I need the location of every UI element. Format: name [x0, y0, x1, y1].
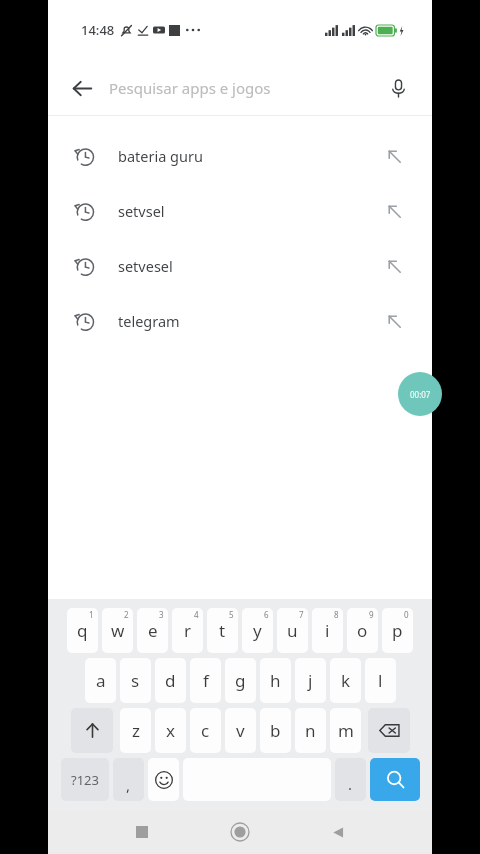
button[interactable]: Search: [370, 758, 420, 801]
button[interactable]: e: [137, 608, 168, 653]
button[interactable]: i: [312, 608, 343, 653]
staticText: 3: [159, 609, 164, 620]
staticText: setvsel: [118, 201, 165, 221]
staticText: ,: [126, 775, 131, 795]
staticText: k: [341, 669, 351, 692]
staticText: f: [203, 669, 209, 692]
button[interactable]: p: [382, 608, 413, 653]
staticText: 4: [194, 609, 199, 620]
button[interactable]: k: [330, 658, 361, 703]
button[interactable]: a: [85, 658, 116, 703]
button[interactable]: q: [67, 608, 98, 653]
button[interactable]: Back: [60, 66, 104, 110]
button[interactable]: Emoji: [148, 758, 179, 801]
button[interactable]: setvsel: [48, 183, 432, 238]
staticText: t: [219, 619, 226, 642]
button[interactable]: z: [120, 708, 151, 753]
staticText: 6: [264, 609, 269, 620]
button[interactable]: h: [260, 658, 291, 703]
staticText: r: [184, 619, 192, 642]
button[interactable]: Recents: [120, 810, 164, 854]
button[interactable]: w: [102, 608, 133, 653]
staticText: g: [235, 669, 246, 692]
button[interactable]: x: [155, 708, 186, 753]
staticText: c: [201, 719, 210, 742]
button[interactable]: Shift: [71, 708, 113, 753]
staticText: 2: [124, 609, 129, 620]
button[interactable]: Insert telegram into search: [382, 309, 406, 333]
button[interactable]: Pesquisar apps e jogos: [104, 60, 378, 115]
button[interactable]: v: [225, 708, 256, 753]
button[interactable]: j: [295, 658, 326, 703]
staticText: m: [338, 719, 354, 742]
staticText: telegram: [118, 311, 180, 331]
staticText: b: [270, 719, 281, 742]
staticText: 00:07: [410, 389, 431, 400]
button[interactable]: c: [190, 708, 221, 753]
button[interactable]: m: [330, 708, 361, 753]
button[interactable]: Voice search: [378, 68, 418, 108]
staticText: 7: [299, 609, 304, 620]
staticText: ?123: [71, 771, 99, 789]
staticText: x: [166, 719, 175, 742]
button[interactable]: bateria guru: [48, 128, 432, 183]
button[interactable]: b: [260, 708, 291, 753]
staticText: Pesquisar apps e jogos: [109, 78, 271, 98]
button[interactable]: y: [242, 608, 273, 653]
button[interactable]: telegram: [48, 293, 432, 348]
staticText: 1: [89, 609, 94, 620]
button[interactable]: s: [120, 658, 151, 703]
button[interactable]: Home: [218, 810, 262, 854]
staticText: z: [132, 719, 140, 742]
button[interactable]: Insert setvesel into search: [382, 254, 406, 278]
staticText: j: [308, 669, 313, 692]
button[interactable]: ,: [113, 758, 144, 801]
staticText: h: [270, 669, 281, 692]
button[interactable]: t: [207, 608, 238, 653]
staticText: s: [131, 669, 140, 692]
staticText: o: [357, 619, 368, 642]
button[interactable]: o: [347, 608, 378, 653]
staticText: u: [287, 619, 298, 642]
button[interactable]: f: [190, 658, 221, 703]
staticText: 9: [369, 609, 374, 620]
staticText: 5: [229, 609, 234, 620]
staticText: 8: [334, 609, 339, 620]
staticText: e: [148, 619, 158, 642]
button[interactable]: u: [277, 608, 308, 653]
button[interactable]: r: [172, 608, 203, 653]
staticText: a: [96, 669, 106, 692]
button[interactable]: Back: [316, 810, 360, 854]
staticText: l: [378, 669, 383, 692]
staticText: q: [77, 619, 88, 642]
button[interactable]: g: [225, 658, 256, 703]
button[interactable]: setvesel: [48, 238, 432, 293]
button[interactable]: n: [295, 708, 326, 753]
button[interactable]: ?123: [61, 758, 109, 801]
staticText: bateria guru: [118, 146, 203, 166]
staticText: d: [165, 669, 176, 692]
button[interactable]: .: [335, 758, 366, 801]
button[interactable]: Insert setvsel into search: [382, 199, 406, 223]
staticText: setvesel: [118, 256, 173, 276]
button[interactable]: l: [365, 658, 396, 703]
button[interactable]: Backspace: [368, 708, 410, 753]
staticText: 0: [404, 609, 409, 620]
staticText: y: [253, 619, 262, 642]
staticText: p: [392, 619, 403, 642]
button[interactable]: Screen recorder timer 00:07: [398, 372, 442, 416]
button[interactable]: d: [155, 658, 186, 703]
staticText: .: [348, 774, 353, 794]
button[interactable]: Insert bateria guru into search: [382, 144, 406, 168]
staticText: n: [305, 719, 316, 742]
staticText: w: [111, 619, 125, 642]
staticText: 14:48: [81, 21, 115, 39]
staticText: v: [236, 719, 245, 742]
staticText: i: [325, 619, 330, 642]
